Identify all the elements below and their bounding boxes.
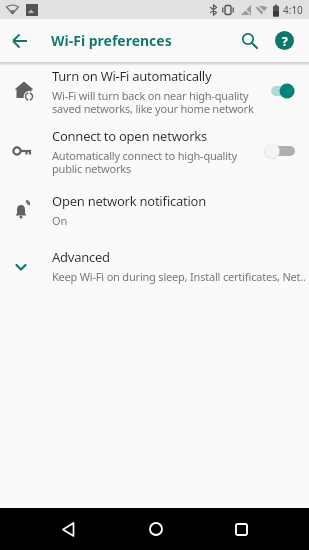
- button[interactable]: ?: [270, 26, 299, 55]
- button[interactable]: Advanced: [0, 240, 309, 292]
- staticText: Connect to open networks: [52, 127, 208, 145]
- staticText: ?: [282, 33, 288, 49]
- staticText: Wi-Fi will turn back on near high-qualit…: [52, 88, 254, 116]
- button[interactable]: [134, 508, 178, 550]
- staticText: Keep Wi-Fi on during sleep, Install cert…: [52, 269, 305, 284]
- button[interactable]: [0, 21, 40, 61]
- button[interactable]: [46, 508, 90, 550]
- staticText: Turn on Wi-Fi automatically: [52, 67, 212, 85]
- button[interactable]: [268, 83, 296, 99]
- staticText: Advanced: [52, 248, 110, 266]
- button[interactable]: Turn on Wi-Fi automatically: [0, 62, 309, 120]
- button[interactable]: [219, 508, 263, 550]
- staticText: Automatically connect to high-quality pu…: [52, 148, 237, 176]
- staticText: Wi-Fi preferences: [51, 31, 172, 50]
- staticText: 4:10: [283, 3, 303, 17]
- staticText: Open network notification: [52, 192, 206, 210]
- button[interactable]: Open network notification: [0, 185, 309, 234]
- button[interactable]: Connect to open networks: [0, 120, 309, 182]
- button[interactable]: [268, 143, 296, 159]
- button[interactable]: [230, 21, 270, 61]
- staticText: On: [52, 213, 67, 228]
